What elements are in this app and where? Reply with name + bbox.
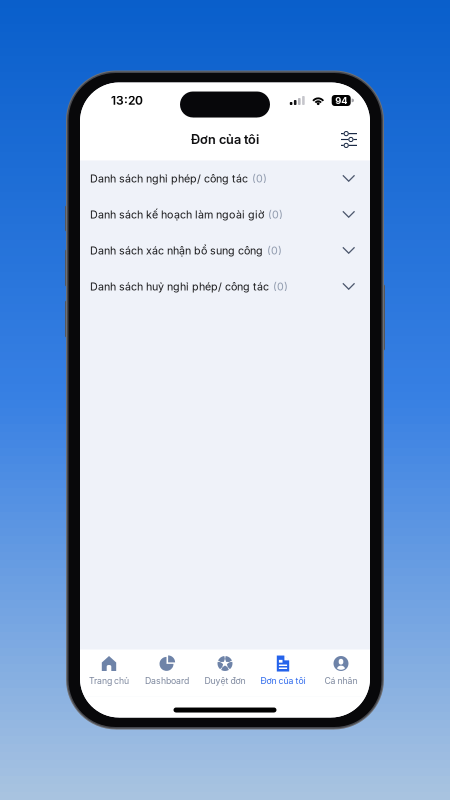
- button[interactable]: Duyệt đơn: [196, 649, 254, 696]
- staticText: Trang chủ: [89, 675, 129, 686]
- staticText: Đơn của tôi: [260, 675, 305, 686]
- staticText: 13:20: [111, 93, 143, 108]
- staticText: (0): [268, 208, 283, 221]
- staticText: (0): [273, 280, 288, 293]
- staticText: Cá nhân: [324, 675, 357, 686]
- staticText: Dashboard: [145, 675, 189, 686]
- staticText: Danh sách kế hoạch làm ngoài giờ: [90, 208, 264, 221]
- staticText: (0): [252, 172, 267, 185]
- button[interactable]: Filter: [335, 125, 363, 153]
- button[interactable]: Cá nhân: [312, 649, 370, 696]
- staticText: 94: [335, 95, 347, 106]
- button[interactable]: Trang chủ: [80, 649, 138, 696]
- staticText: Duyệt đơn: [204, 675, 245, 686]
- staticText: Đơn của tôi: [191, 132, 259, 147]
- button[interactable]: Danh sách huỷ nghỉ phép/ công tác: [80, 268, 370, 304]
- staticText: (0): [267, 244, 282, 257]
- button[interactable]: Danh sách kế hoạch làm ngoài giờ: [80, 196, 370, 232]
- staticText: Danh sách huỷ nghỉ phép/ công tác: [90, 280, 269, 293]
- button[interactable]: Dashboard: [138, 649, 196, 696]
- button[interactable]: Danh sách nghỉ phép/ công tác: [80, 160, 370, 196]
- button[interactable]: Đơn của tôi: [254, 649, 312, 696]
- staticText: Danh sách nghỉ phép/ công tác: [90, 172, 248, 185]
- button[interactable]: Danh sách xác nhận bổ sung công: [80, 232, 370, 268]
- staticText: Danh sách xác nhận bổ sung công: [90, 244, 263, 257]
